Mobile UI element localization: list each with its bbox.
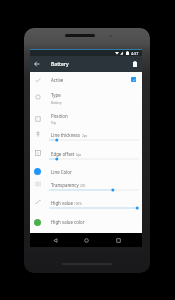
button[interactable]: Active <box>30 72 142 86</box>
staticText: 200 <box>80 184 86 188</box>
staticText: 100% <box>74 202 82 206</box>
staticText: 6px <box>76 153 82 157</box>
button[interactable]: Type <box>30 86 142 108</box>
staticText: Top <box>51 121 57 125</box>
staticText: 2px <box>82 134 88 138</box>
staticText: Type <box>51 92 61 98</box>
staticText: Position <box>51 113 68 119</box>
staticText: Edge offset <box>51 151 75 157</box>
staticText: Active <box>51 77 64 83</box>
button[interactable]: Navigate up <box>30 56 44 72</box>
button[interactable]: Recent apps <box>111 233 125 247</box>
button[interactable]: High value <box>30 196 142 215</box>
staticText: Line thickness <box>51 132 81 138</box>
staticText: Transparency <box>51 182 79 188</box>
staticText: High value <box>51 200 73 206</box>
staticText: Battery <box>51 101 62 105</box>
staticText: High value color <box>51 219 85 225</box>
button[interactable]: Back <box>48 233 62 247</box>
button[interactable]: High value color <box>30 214 142 230</box>
button[interactable]: Line thickness <box>30 128 142 147</box>
button[interactable]: Line Color <box>30 165 142 178</box>
staticText: Battery <box>51 61 69 68</box>
staticText: 4:37 <box>131 51 139 56</box>
button[interactable]: Battery status <box>128 56 142 72</box>
button[interactable]: Edge offset <box>30 147 142 166</box>
button[interactable]: Transparency <box>30 178 142 196</box>
staticText: Line Color <box>51 169 72 175</box>
button[interactable]: Home <box>79 233 93 247</box>
button[interactable]: Position <box>30 108 142 128</box>
